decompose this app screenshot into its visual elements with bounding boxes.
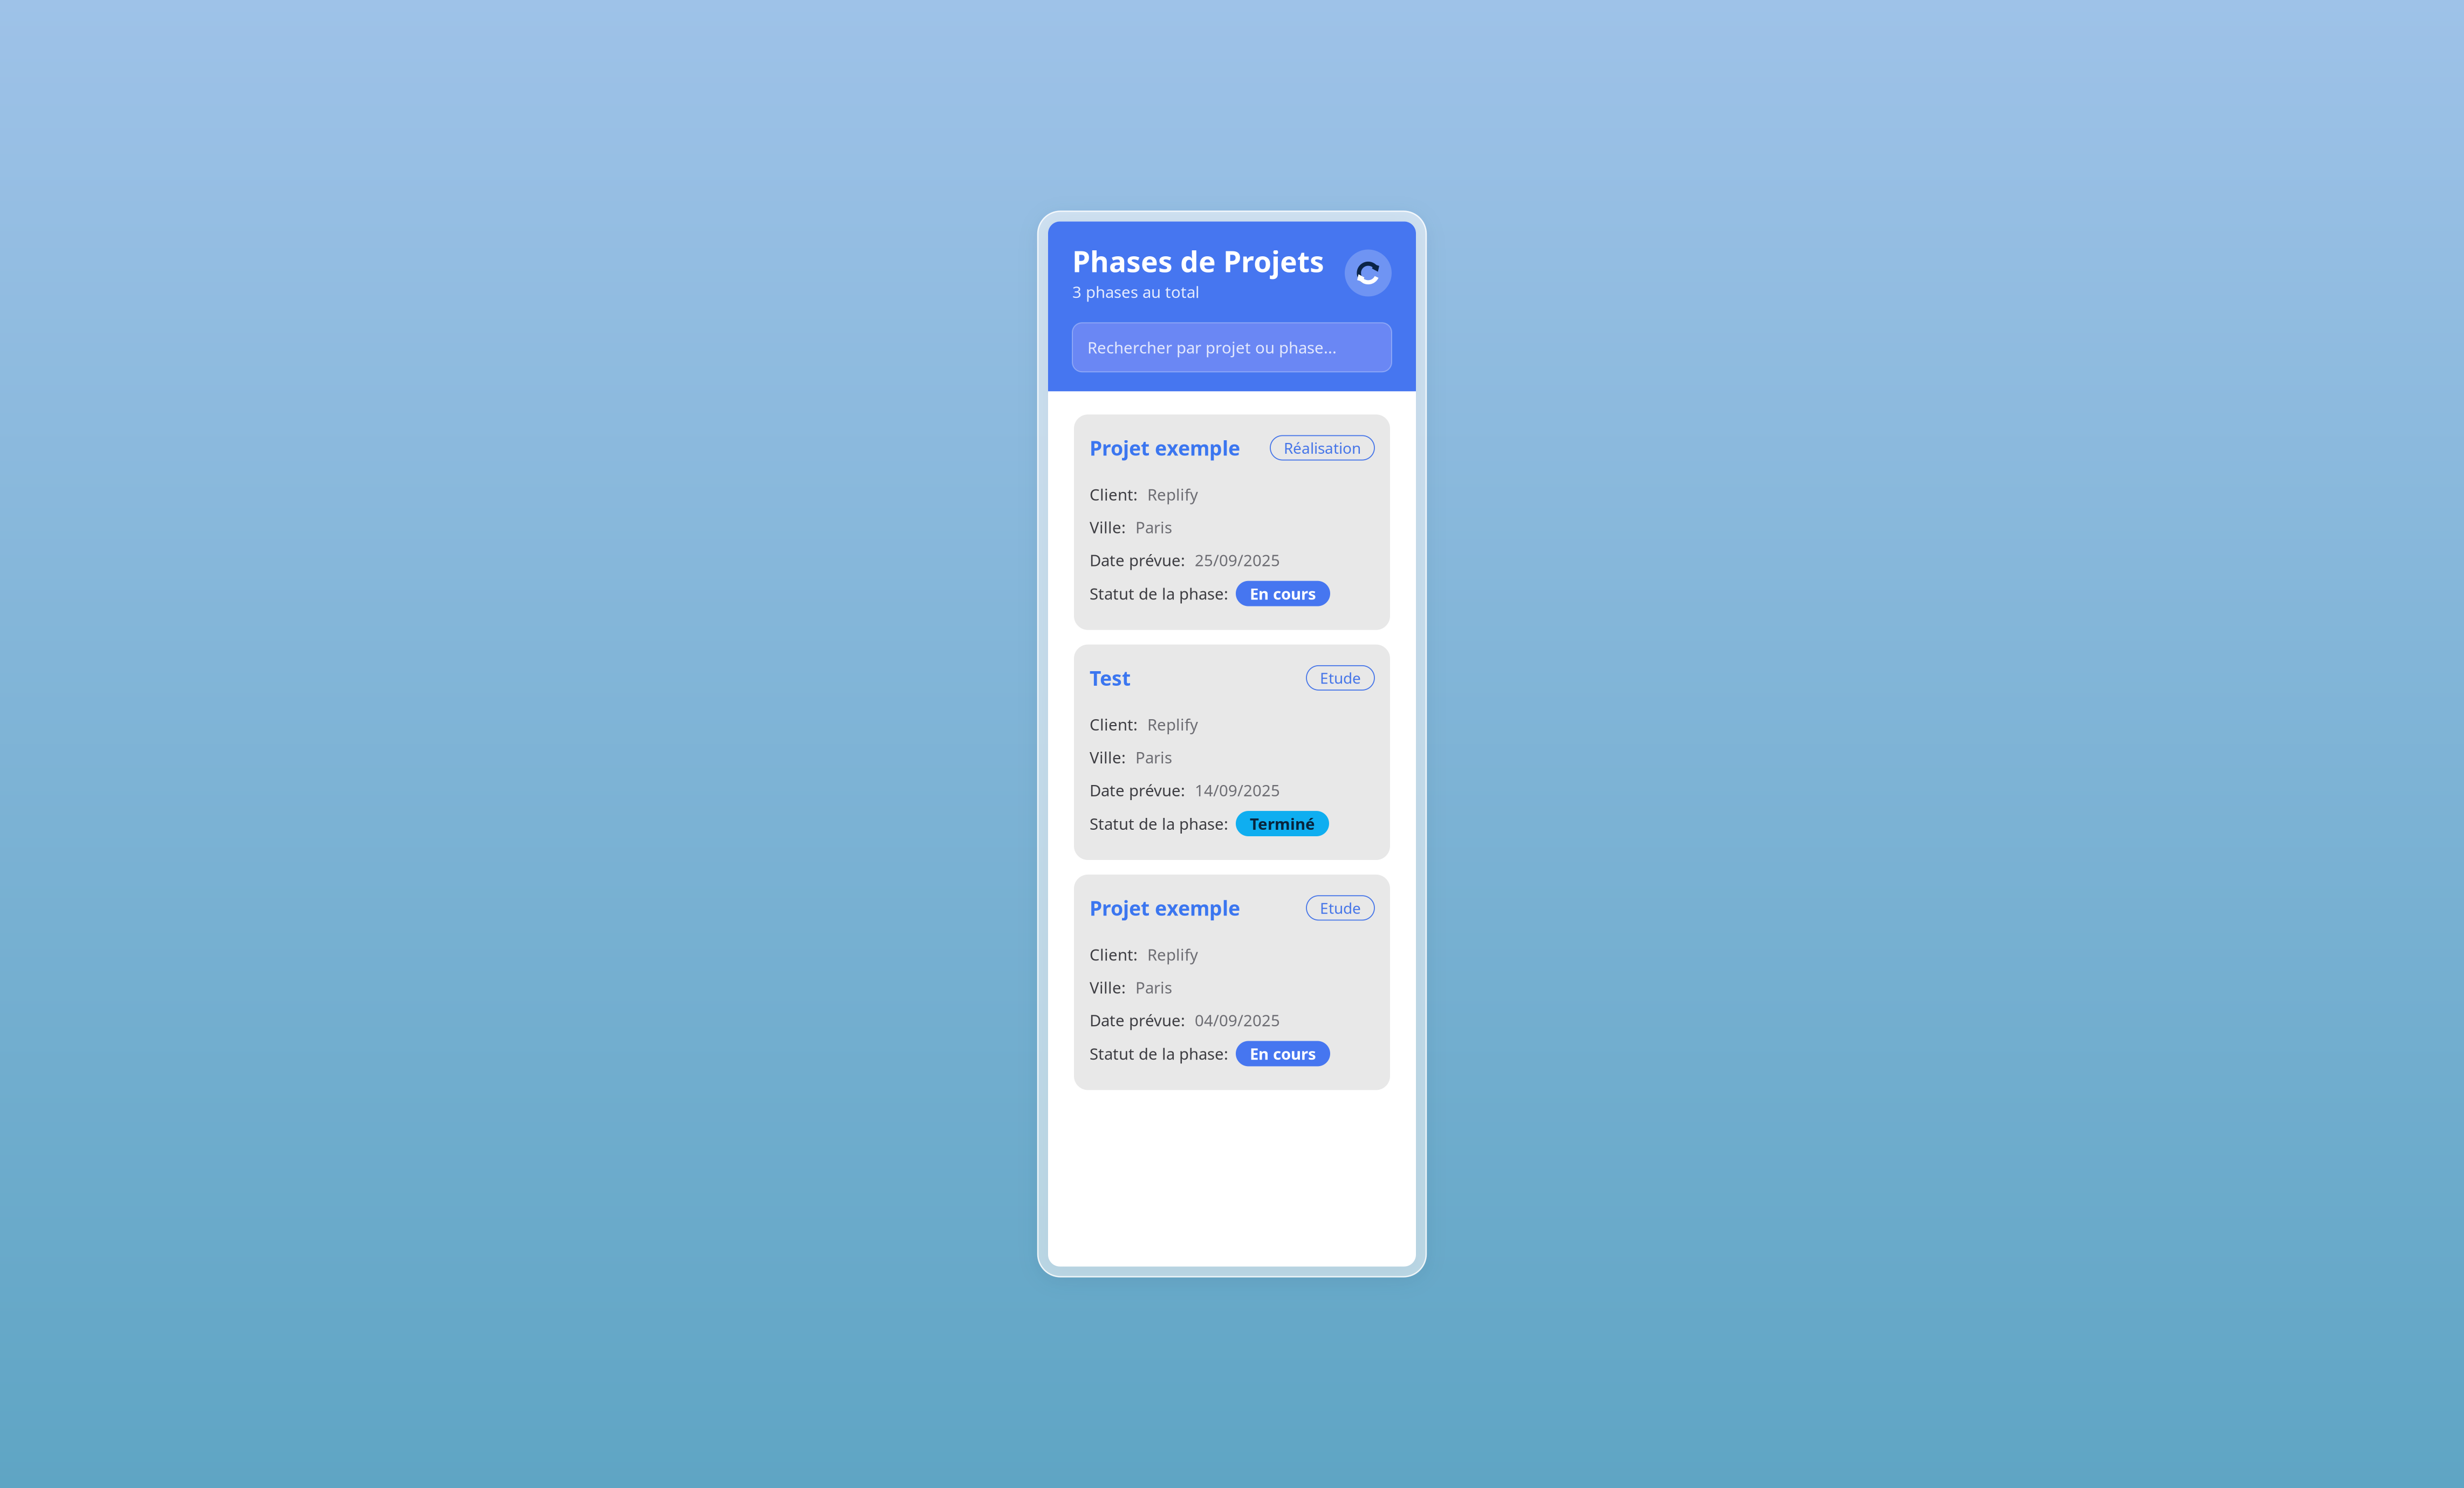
- staticText: Ville:: [1090, 517, 1126, 538]
- staticText: Statut de la phase:: [1090, 583, 1228, 604]
- staticText: Date prévue:: [1090, 1010, 1185, 1031]
- staticText: Réalisation: [1284, 438, 1361, 458]
- staticText: Ville:: [1090, 747, 1126, 768]
- staticText: En cours: [1250, 1043, 1316, 1064]
- staticText: Projet exemple: [1090, 895, 1240, 921]
- staticText: Paris: [1135, 517, 1172, 538]
- staticText: Replify: [1147, 484, 1198, 505]
- button[interactable]: Actualiser: [1345, 242, 1392, 296]
- staticText: Etude: [1320, 668, 1361, 688]
- staticText: Replify: [1147, 944, 1198, 965]
- button[interactable]: Test: [1074, 645, 1390, 860]
- staticText: Statut de la phase:: [1090, 1043, 1228, 1064]
- staticText: Paris: [1135, 977, 1172, 998]
- staticText: Replify: [1147, 714, 1198, 735]
- staticText: Paris: [1135, 747, 1172, 768]
- staticText: 25/09/2025: [1195, 550, 1280, 571]
- button[interactable]: Projet exemple: [1074, 875, 1390, 1090]
- staticText: Terminé: [1250, 813, 1315, 834]
- staticText: Phases de Projets: [1072, 242, 1324, 280]
- staticText: Date prévue:: [1090, 780, 1185, 801]
- staticText: Client:: [1090, 944, 1138, 965]
- staticText: Projet exemple: [1090, 434, 1240, 461]
- staticText: Test: [1090, 664, 1131, 691]
- button[interactable]: Projet exemple: [1074, 414, 1390, 630]
- staticText: Statut de la phase:: [1090, 813, 1228, 834]
- staticText: 04/09/2025: [1195, 1010, 1280, 1031]
- staticText: Date prévue:: [1090, 550, 1185, 571]
- button[interactable]: Rechercher par projet ou phase...: [1072, 323, 1392, 372]
- staticText: 14/09/2025: [1195, 780, 1280, 801]
- staticText: Client:: [1090, 714, 1138, 735]
- staticText: Ville:: [1090, 977, 1126, 998]
- staticText: En cours: [1250, 583, 1316, 604]
- staticText: 3 phases au total: [1072, 281, 1200, 302]
- staticText: Rechercher par projet ou phase...: [1087, 337, 1337, 358]
- staticText: Client:: [1090, 484, 1138, 505]
- staticText: Etude: [1320, 898, 1361, 918]
